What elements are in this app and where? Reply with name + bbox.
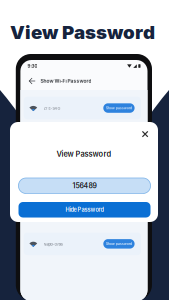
staticText: View Password [10,21,155,44]
staticText: Show password [106,242,132,246]
button[interactable]: ZTE-S4G [24,97,141,119]
staticText: Show Wi-Fi Password [40,78,91,84]
button[interactable]: Close [139,128,152,141]
staticText: Napo-0786 [44,242,63,247]
staticText: View Password [56,149,111,158]
button[interactable]: Napo-0786 [24,232,141,255]
button[interactable]: Back [28,76,37,85]
staticText: 156489 [72,182,96,190]
staticText: Hide Password [65,206,103,213]
button[interactable]: Hide Password [18,202,150,217]
staticText: 9:30 [27,63,37,69]
staticText: Show password [106,106,132,110]
staticText: ZTE-S4G [44,106,61,111]
